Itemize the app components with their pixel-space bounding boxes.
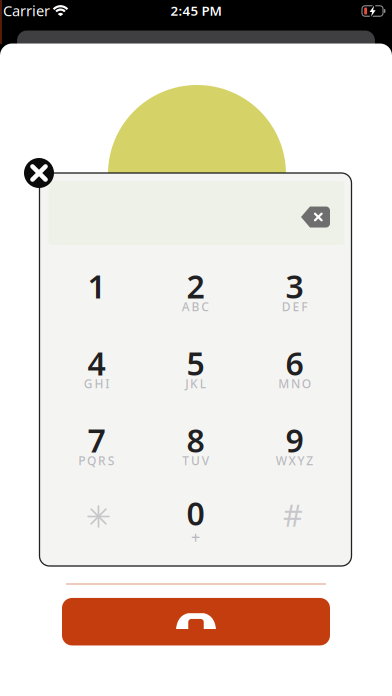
staticText: 1 xyxy=(87,265,105,307)
button[interactable]: Call xyxy=(62,598,330,645)
button[interactable]: 7 xyxy=(46,403,146,477)
button[interactable]: Star xyxy=(51,483,141,547)
staticText: 4 xyxy=(87,342,105,384)
button[interactable]: 8 xyxy=(145,403,245,477)
staticText: GHI xyxy=(84,375,109,391)
staticText: 8 xyxy=(186,419,204,461)
staticText: 9 xyxy=(285,419,303,461)
button[interactable]: 9 xyxy=(244,403,344,477)
staticText: 2 xyxy=(186,265,204,307)
staticText: 0 xyxy=(186,492,204,534)
staticText: # xyxy=(283,494,303,535)
staticText: 7 xyxy=(87,419,105,461)
button[interactable]: 3 xyxy=(244,249,344,323)
button[interactable]: 6 xyxy=(244,326,344,400)
staticText: Carrier xyxy=(3,1,50,20)
button[interactable]: 4 xyxy=(46,326,146,400)
staticText: + xyxy=(191,527,200,548)
button[interactable]: Close xyxy=(24,158,54,188)
staticText: 5 xyxy=(186,342,204,384)
staticText: TUV xyxy=(182,452,209,468)
button[interactable]: 0 xyxy=(150,483,240,549)
staticText: WXYZ xyxy=(276,452,313,468)
staticText: MNO xyxy=(278,375,311,391)
button[interactable]: 1 xyxy=(46,249,146,323)
button[interactable]: Delete xyxy=(301,206,330,227)
staticText: ABC xyxy=(182,298,209,314)
staticText: 3 xyxy=(285,265,303,307)
staticText: 2:45 PM xyxy=(170,2,221,19)
staticText: PQRS xyxy=(78,452,115,468)
button[interactable]: 2 xyxy=(145,249,245,323)
staticText: DEF xyxy=(282,298,307,314)
button[interactable]: Pound xyxy=(249,483,339,547)
staticText: JKL xyxy=(185,375,206,391)
staticText: 6 xyxy=(285,342,303,384)
button[interactable]: 5 xyxy=(145,326,245,400)
